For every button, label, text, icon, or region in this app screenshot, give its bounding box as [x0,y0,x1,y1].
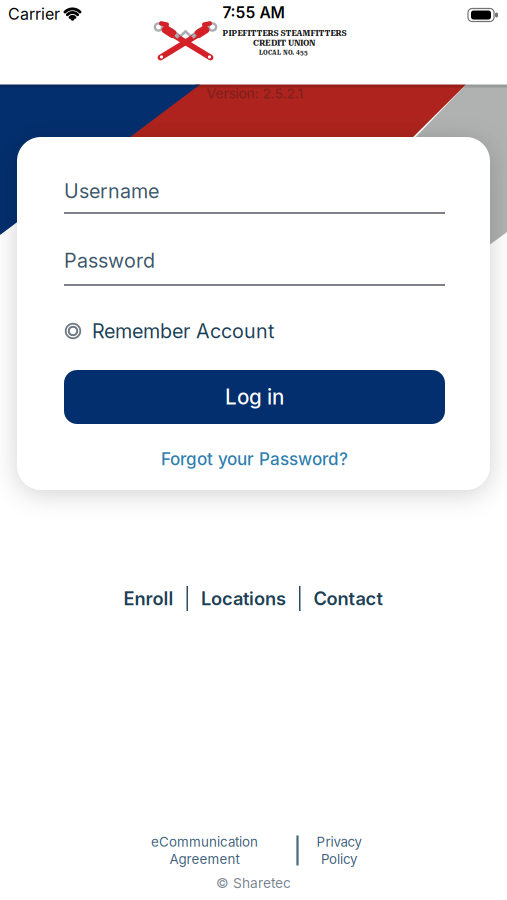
staticText: Remember Account [92,319,274,343]
button[interactable]: Locations [201,587,286,609]
button[interactable]: Username [64,179,445,217]
button[interactable]: Password [64,249,445,289]
staticText: Privacy [316,834,361,850]
staticText: Agreement [169,851,239,867]
button[interactable]: Forgot your Password? [161,449,348,469]
staticText: Version: 2.5.2.1 [206,85,303,102]
button[interactable]: eCommunication [151,834,258,867]
staticText: LOCAL NO. 455 [259,49,308,56]
staticText: Username [64,179,159,203]
staticText: eCommunication [151,834,258,850]
button[interactable]: Log in [64,370,445,424]
button[interactable]: Remember Account [64,316,445,346]
staticText: Enroll [123,587,173,609]
button[interactable]: Privacy [316,834,361,867]
staticText: 7:55 AM [222,3,284,22]
button[interactable]: Enroll [123,587,173,609]
staticText: Forgot your Password? [161,449,348,469]
staticText: Password [64,249,155,272]
staticText: CREDIT UNION [253,37,315,48]
staticText: Contact [313,587,382,609]
staticText: Locations [201,587,286,609]
button[interactable]: Contact [313,587,382,609]
staticText: Carrier [8,4,60,24]
staticText: Log in [225,384,284,409]
staticText: PIPEFITTERS STEAMFITTERS [222,28,346,38]
staticText: © Sharetec [216,875,291,891]
staticText: Policy [321,851,357,867]
